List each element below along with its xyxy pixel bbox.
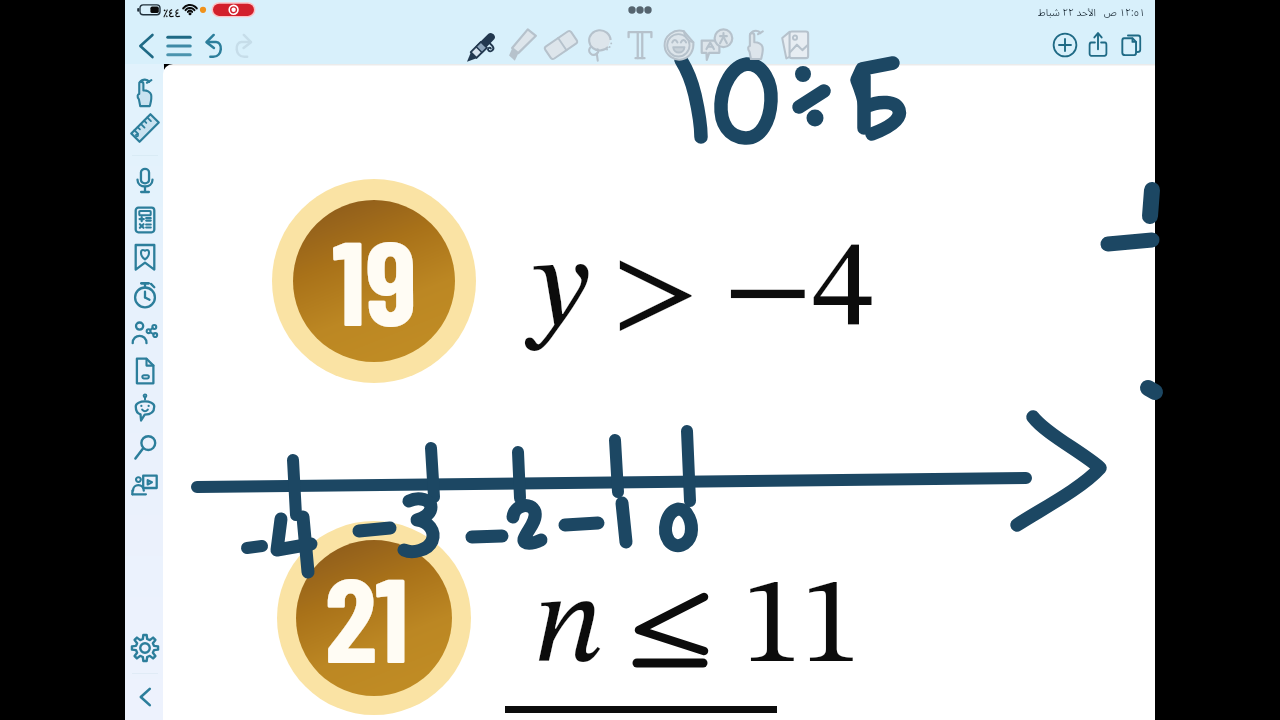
- button[interactable]: Hand tool: [128, 76, 162, 110]
- button[interactable]: Timer: [128, 278, 162, 312]
- button[interactable]: Collapse sidebar: [128, 680, 162, 714]
- button[interactable]: Bookmark: [128, 240, 162, 274]
- button[interactable]: Text box: [621, 25, 659, 65]
- staticText: −: [723, 232, 813, 356]
- button[interactable]: Assistant: [128, 392, 162, 426]
- staticText: 21: [325, 545, 409, 687]
- button[interactable]: Lasso select: [581, 25, 619, 65]
- button[interactable]: Eraser: [542, 25, 580, 65]
- staticText: >: [611, 234, 701, 358]
- staticText: 𝑛: [533, 567, 604, 691]
- button[interactable]: Duplicate: [1113, 27, 1149, 63]
- button[interactable]: Pen: [465, 25, 503, 65]
- button[interactable]: Share with people: [128, 316, 162, 350]
- button[interactable]: Ruler: [128, 111, 162, 145]
- staticText: 𝑦: [527, 230, 591, 354]
- staticText: 1: [800, 567, 862, 691]
- button[interactable]: Undo: [196, 29, 228, 63]
- button[interactable]: Add page: [1047, 27, 1083, 63]
- staticText: 19: [332, 208, 417, 350]
- button[interactable]: Hand tool: [737, 25, 775, 65]
- button[interactable]: Settings: [128, 631, 162, 665]
- button[interactable]: Back: [130, 29, 162, 63]
- staticText: ١٢:٥١ ص الأحد ٢٢ شباط: [995, 2, 1145, 22]
- button[interactable]: Calculator: [128, 203, 162, 237]
- button[interactable]: Search: [128, 430, 162, 464]
- button[interactable]: Share: [1080, 27, 1116, 63]
- button[interactable]: Sticker: [660, 25, 698, 65]
- button[interactable]: Record audio: [128, 163, 162, 197]
- staticText: 4: [812, 231, 874, 355]
- button[interactable]: Presentation mode: [128, 468, 162, 502]
- button[interactable]: Menu: [163, 30, 195, 62]
- button[interactable]: Highlighter: [504, 25, 542, 65]
- button[interactable]: Redo: [229, 29, 261, 63]
- button[interactable]: Translate: [698, 25, 736, 65]
- button[interactable]: Insert media: [776, 25, 814, 65]
- button[interactable]: Pages: [128, 354, 162, 388]
- staticText: 1: [741, 567, 803, 691]
- staticText: ٪٤٤: [163, 2, 181, 25]
